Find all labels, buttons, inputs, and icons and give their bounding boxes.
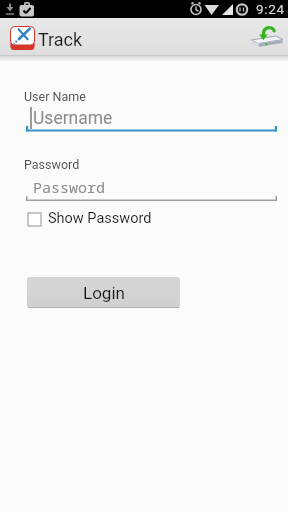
staticText: Password: [24, 157, 80, 172]
staticText: User Name: [24, 89, 86, 104]
staticText: 9:24: [256, 1, 285, 17]
staticText: Show Password: [48, 210, 152, 227]
staticText: Login: [83, 283, 125, 303]
button[interactable]: [251, 26, 285, 52]
button[interactable]: [24, 207, 154, 231]
button[interactable]: [26, 103, 277, 132]
button[interactable]: [26, 172, 277, 201]
staticText: Track: [38, 29, 83, 50]
staticText: Username: [33, 108, 113, 129]
button[interactable]: Login: [27, 277, 180, 308]
staticText: Password: [33, 177, 106, 197]
